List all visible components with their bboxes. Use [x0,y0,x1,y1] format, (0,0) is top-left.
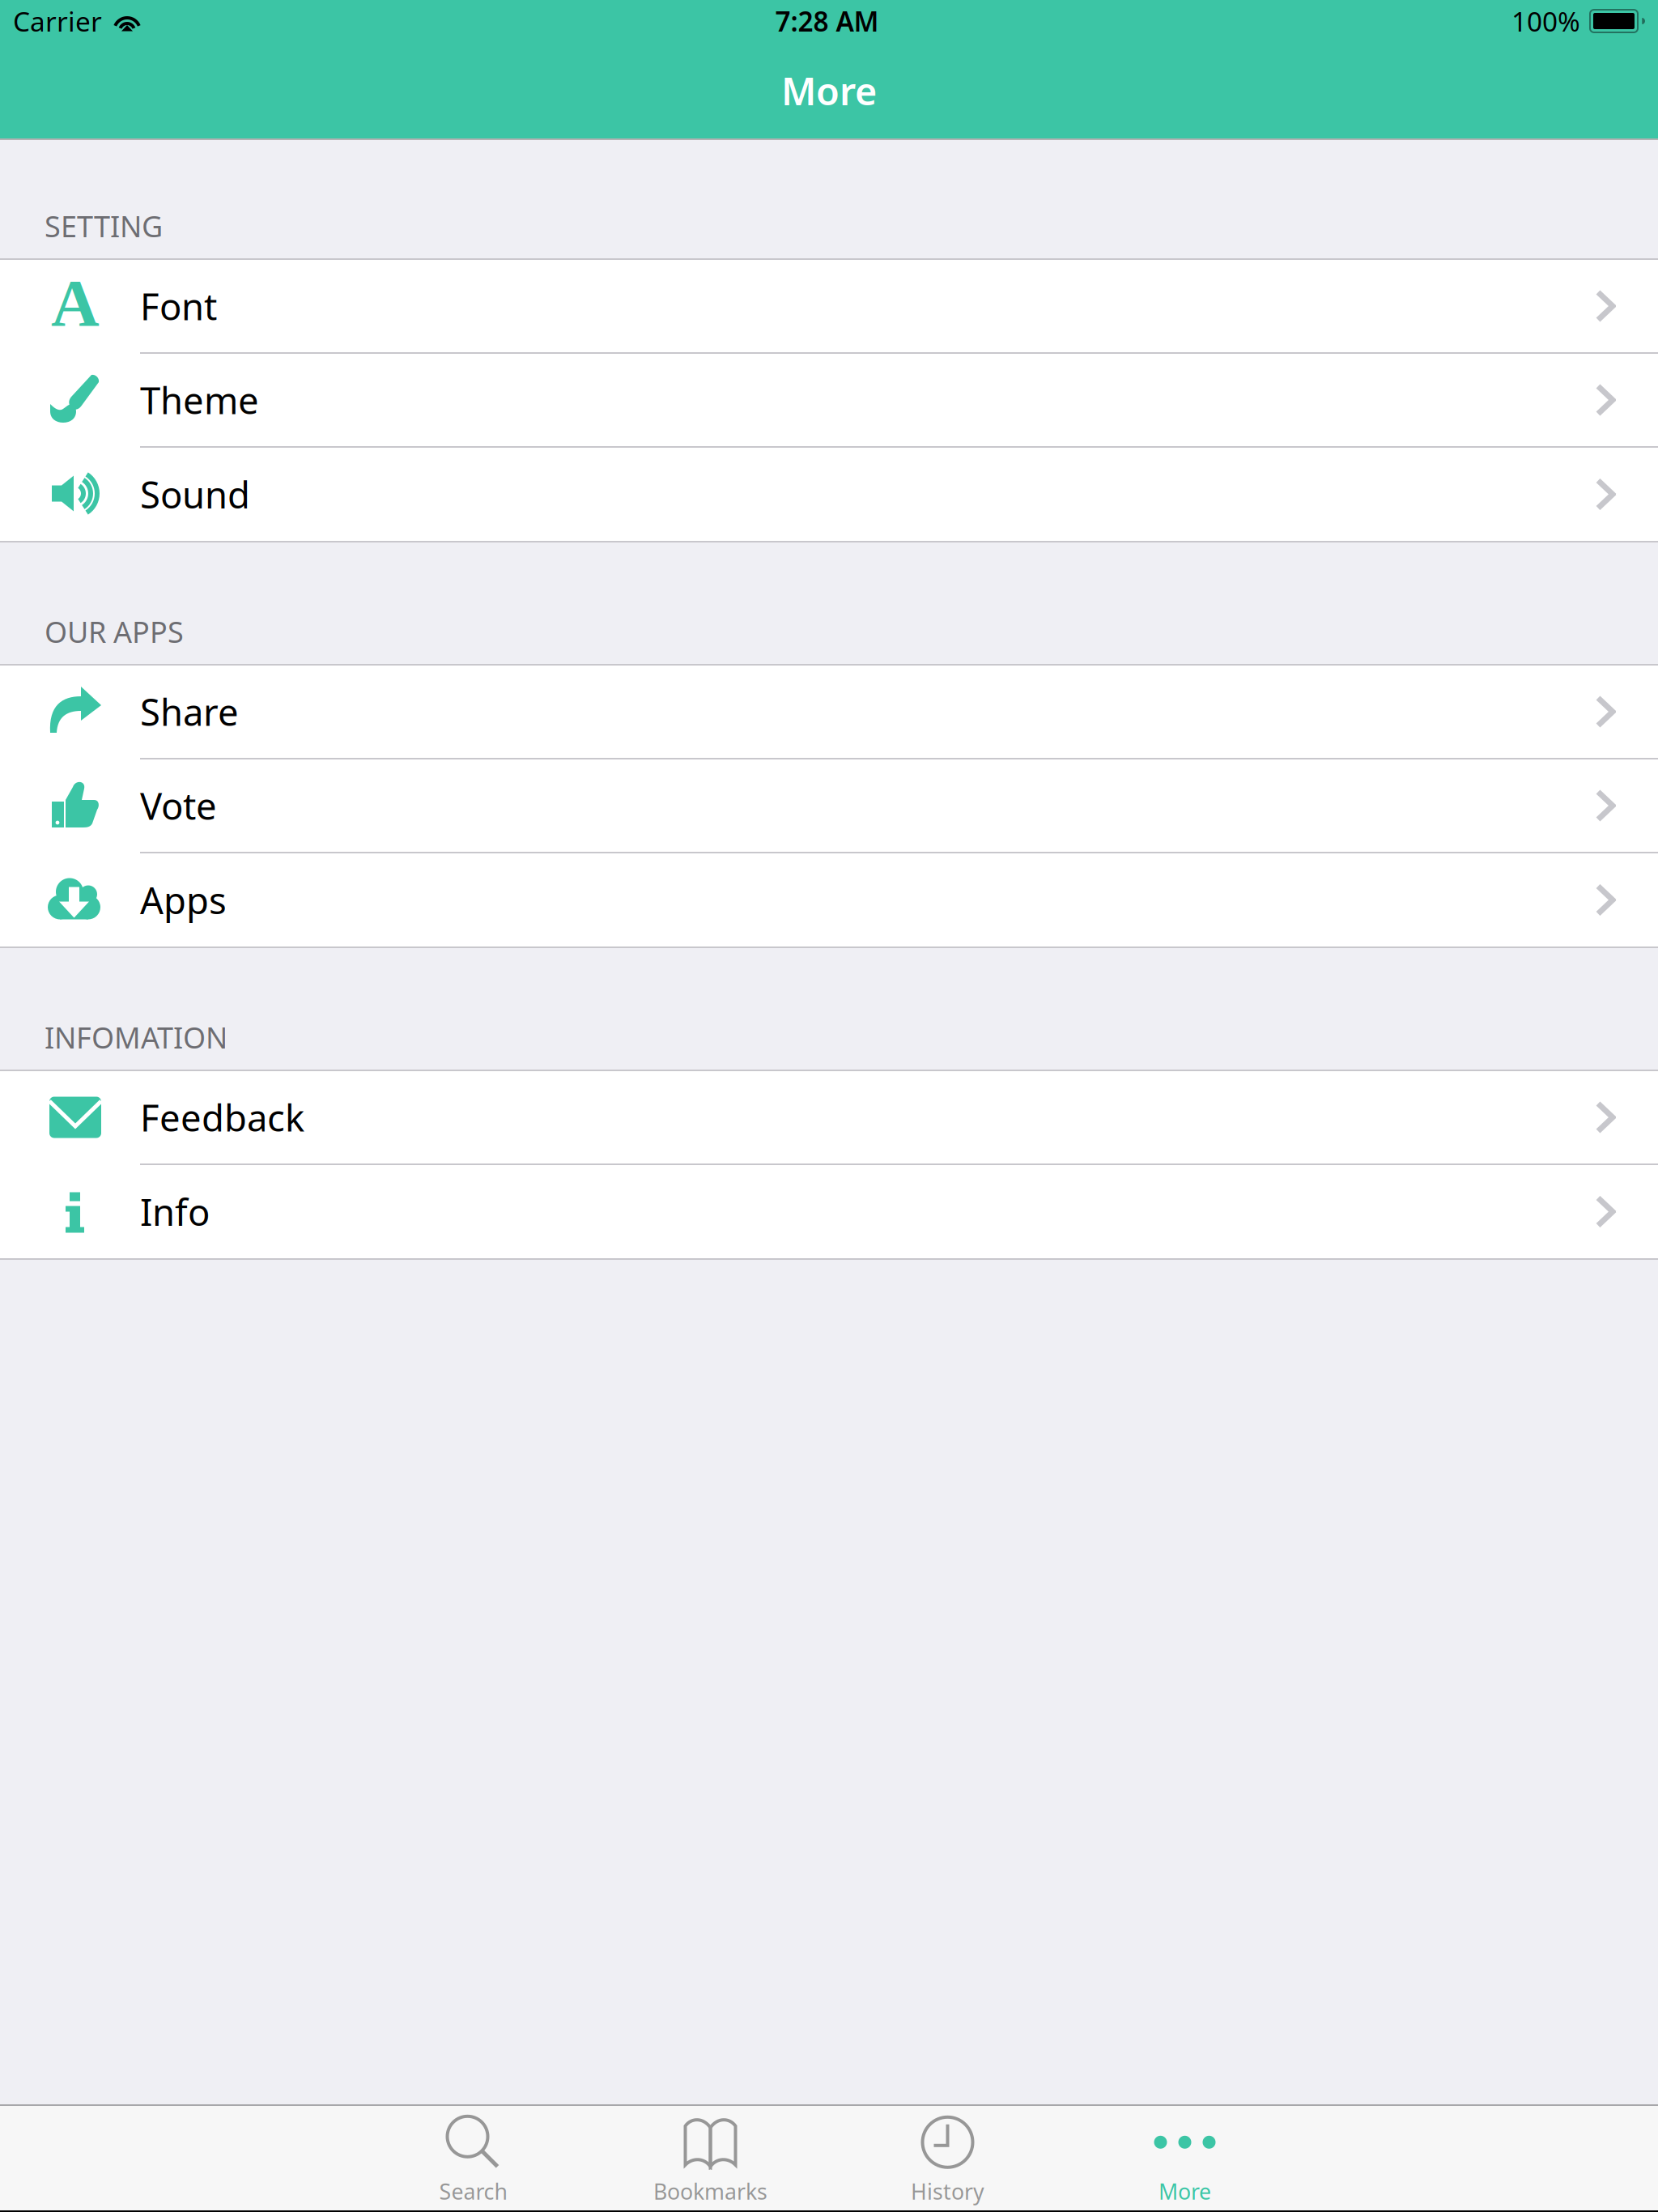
staticText: 100% [1511,3,1580,39]
staticText: Vote [140,781,217,830]
staticText: History [911,2177,984,2206]
button[interactable]: Feedback [0,1071,1658,1165]
button[interactable]: More [1066,2104,1303,2210]
staticText: Font [140,282,217,330]
button[interactable]: Vote [0,759,1658,853]
button[interactable]: Search [355,2104,592,2210]
staticText: Share [140,687,239,736]
staticText: More [1158,2177,1211,2206]
staticText: A [51,266,100,340]
staticText: 7:28 AM [775,3,879,39]
button[interactable]: Share [0,666,1658,759]
staticText: Bookmarks [653,2177,767,2206]
staticText: Carrier [13,3,102,39]
button[interactable]: Info [0,1165,1658,1258]
button[interactable]: Sound [0,448,1658,541]
staticText: SETTING [45,207,163,245]
staticText: Theme [140,376,259,424]
button[interactable]: Bookmarks [592,2104,829,2210]
staticText: Search [439,2177,507,2206]
staticText: OUR APPS [45,612,184,651]
button[interactable]: History [829,2104,1066,2210]
staticText: Feedback [140,1093,304,1142]
staticText: Sound [140,470,250,519]
button[interactable]: A [0,260,1658,354]
staticText: Apps [140,876,227,924]
staticText: Info [140,1187,210,1236]
button[interactable]: Apps [0,853,1658,946]
staticText: INFOMATION [45,1018,227,1057]
staticText: More [781,66,877,116]
button[interactable]: Theme [0,354,1658,448]
